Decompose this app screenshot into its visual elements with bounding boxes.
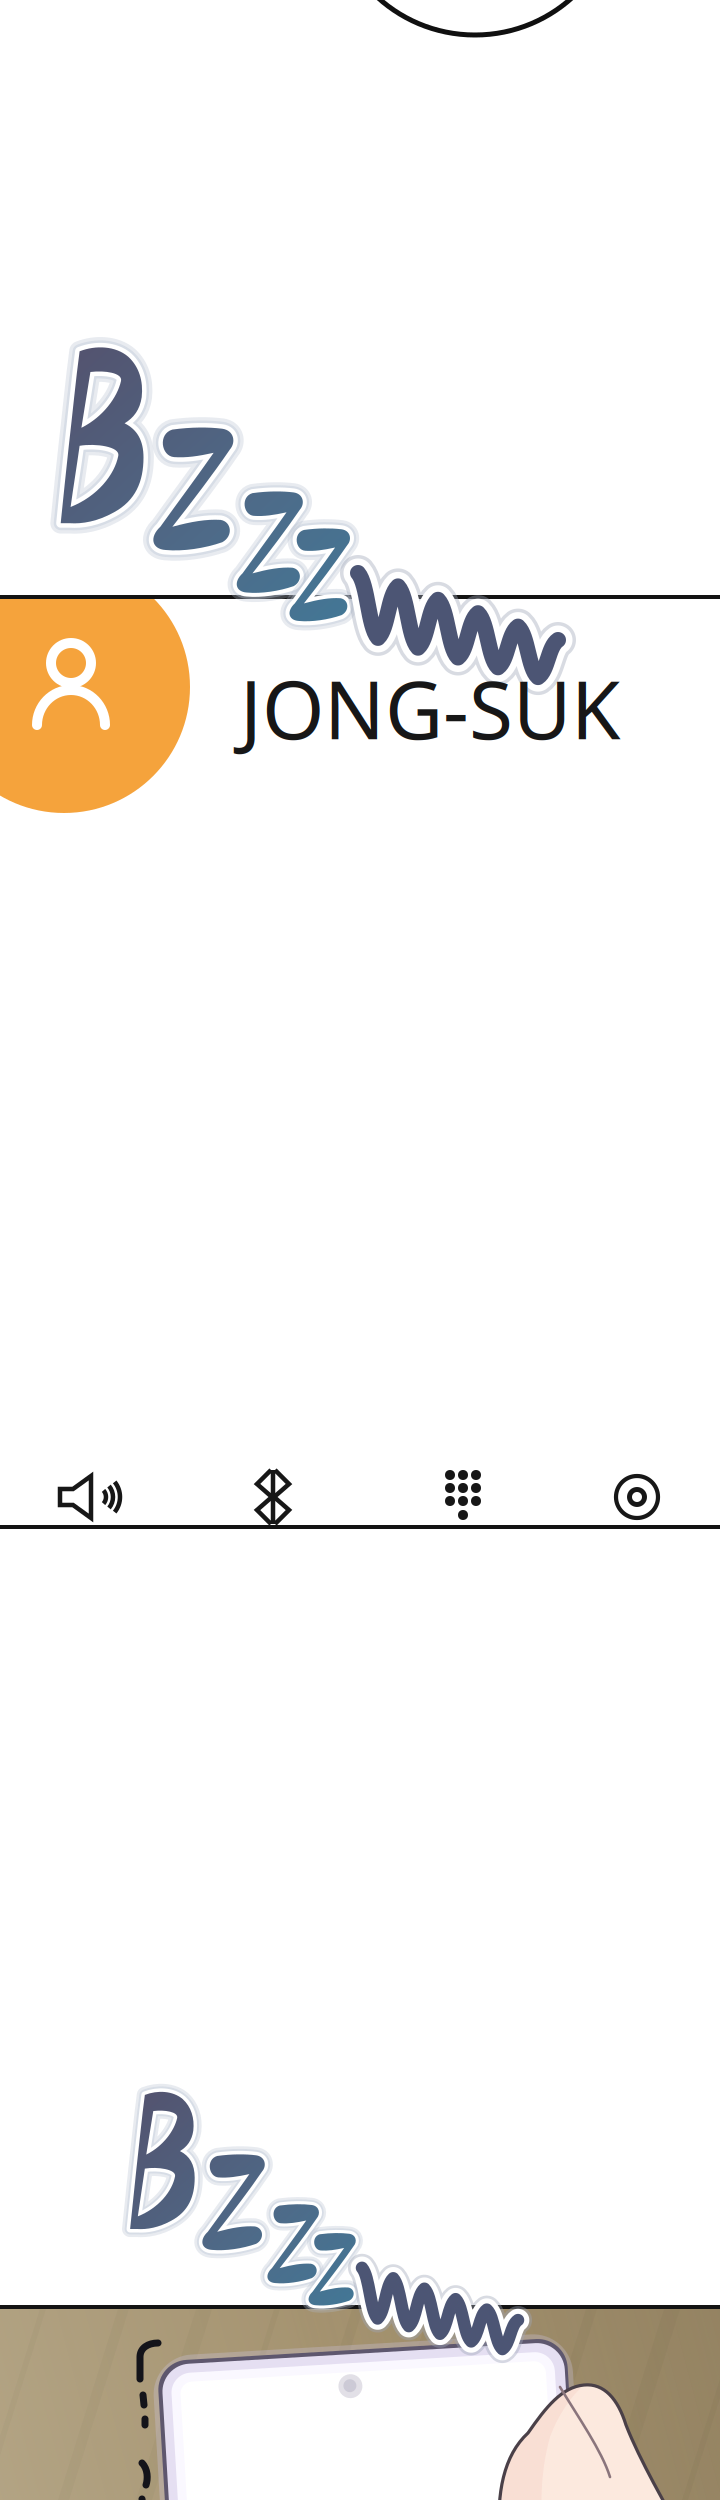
button[interactable]: Record — [557, 1442, 717, 1552]
button[interactable]: Keypad — [383, 1440, 543, 1550]
staticText: JONG-SUK — [240, 655, 621, 761]
button[interactable]: Bluetooth — [193, 1442, 353, 1552]
button[interactable]: Speaker — [12, 1442, 172, 1552]
